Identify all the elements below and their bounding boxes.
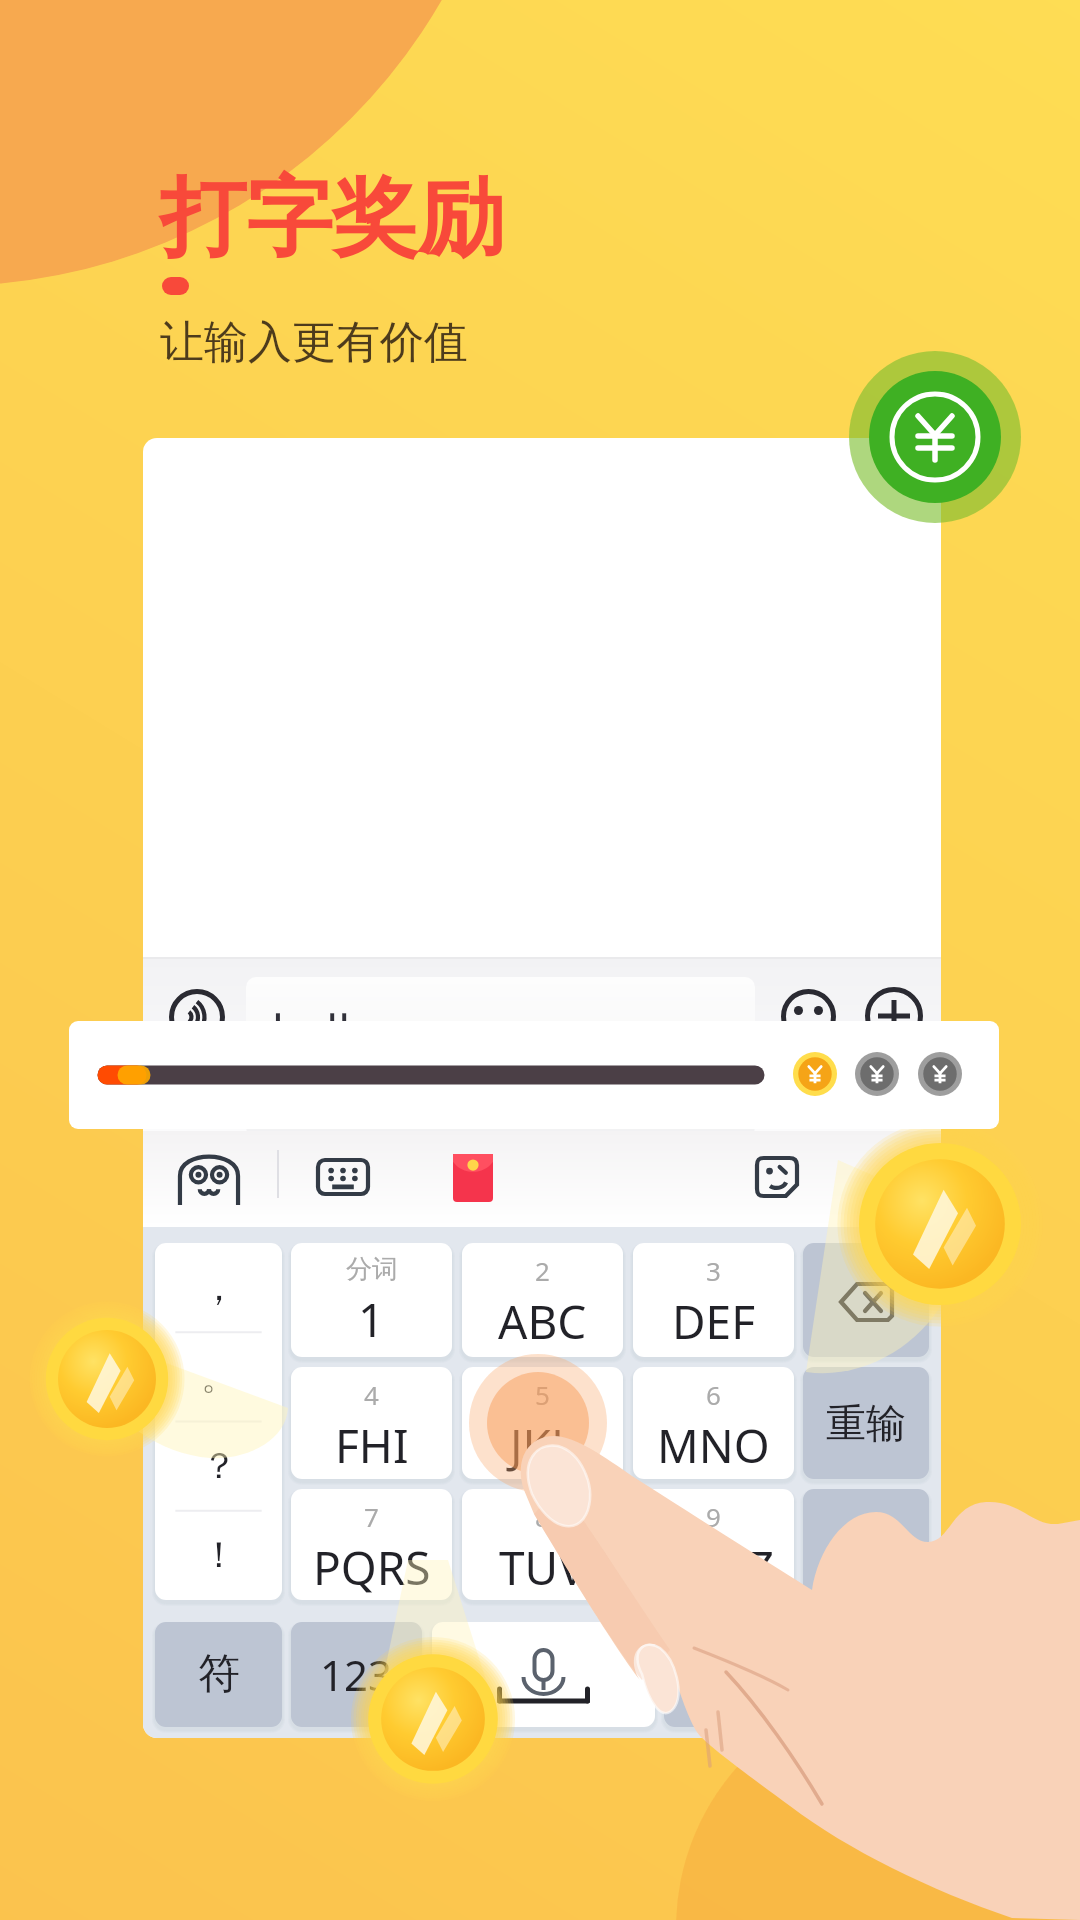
staticText: 分词 [346, 1253, 398, 1286]
button[interactable]: Coin locked [855, 1052, 899, 1096]
staticText: ABC [498, 1290, 587, 1353]
staticText: PQRS [313, 1536, 431, 1599]
staticText: 0 [853, 1513, 880, 1576]
button[interactable]: Backspace [803, 1243, 929, 1357]
staticText: 3 [706, 1253, 721, 1288]
staticText: JKL [510, 1414, 576, 1477]
staticText: 8 [535, 1499, 550, 1534]
staticText: 符 [198, 1648, 240, 1701]
staticText: DEF [672, 1290, 756, 1353]
button[interactable]: Red packet [453, 1154, 493, 1202]
staticText: 2 [535, 1253, 550, 1288]
button[interactable]: 5 [462, 1367, 623, 1479]
staticText: TUV [499, 1536, 586, 1599]
staticText: 1 [358, 1288, 385, 1351]
button[interactable]: Coin locked [918, 1052, 962, 1096]
staticText: FHI [335, 1414, 409, 1477]
staticText: 重输 [826, 1398, 906, 1448]
button[interactable]: Keyboard [316, 1158, 370, 1196]
staticText: ， [201, 1265, 237, 1310]
staticText: 。 [201, 1354, 237, 1399]
button[interactable]: 符 [155, 1622, 282, 1727]
staticText: 让输入更有价值 [160, 315, 468, 370]
button[interactable]: 2 [462, 1243, 623, 1357]
button[interactable]: Mascot [176, 1149, 242, 1205]
staticText: 4 [364, 1377, 379, 1412]
button[interactable]: 8 [462, 1489, 623, 1600]
staticText: 7 [364, 1499, 379, 1534]
staticText: 打字奖励 [160, 164, 504, 272]
button[interactable]: 9 [633, 1489, 794, 1600]
staticText: ？ [201, 1443, 237, 1488]
button[interactable]: 3 [633, 1243, 794, 1357]
button[interactable]: 123 [291, 1622, 422, 1727]
button[interactable]: Coin earned [69, 1021, 999, 1129]
button[interactable]: 7 [291, 1489, 452, 1600]
button[interactable]: 0 [803, 1489, 929, 1600]
button[interactable]: Space, voice input [432, 1622, 655, 1727]
staticText: hello [272, 999, 378, 1062]
staticText: 123 [320, 1646, 393, 1703]
button[interactable]: 重输 [803, 1367, 929, 1479]
button[interactable]: Stickers [755, 1156, 799, 1198]
staticText: ！ [201, 1532, 237, 1577]
button[interactable]: Cash rewards [849, 351, 1021, 523]
button[interactable]: 分词 [291, 1243, 452, 1357]
button[interactable]: ， [155, 1243, 282, 1600]
button[interactable]: More [865, 987, 923, 1045]
button[interactable]: 4 [291, 1367, 452, 1479]
staticText: WXYZ [652, 1536, 775, 1599]
button[interactable]: 6 [633, 1367, 794, 1479]
button[interactable]: hello [246, 977, 755, 1137]
button[interactable]: Switch language [664, 1622, 795, 1727]
staticText: 6 [706, 1377, 721, 1412]
button[interactable]: Voice [169, 989, 225, 1045]
button[interactable]: Emoji [781, 989, 836, 1044]
staticText: 9 [706, 1499, 721, 1534]
staticText: 5 [535, 1377, 550, 1412]
button[interactable]: Coin earned [793, 1052, 837, 1096]
staticText: MNO [657, 1414, 770, 1477]
